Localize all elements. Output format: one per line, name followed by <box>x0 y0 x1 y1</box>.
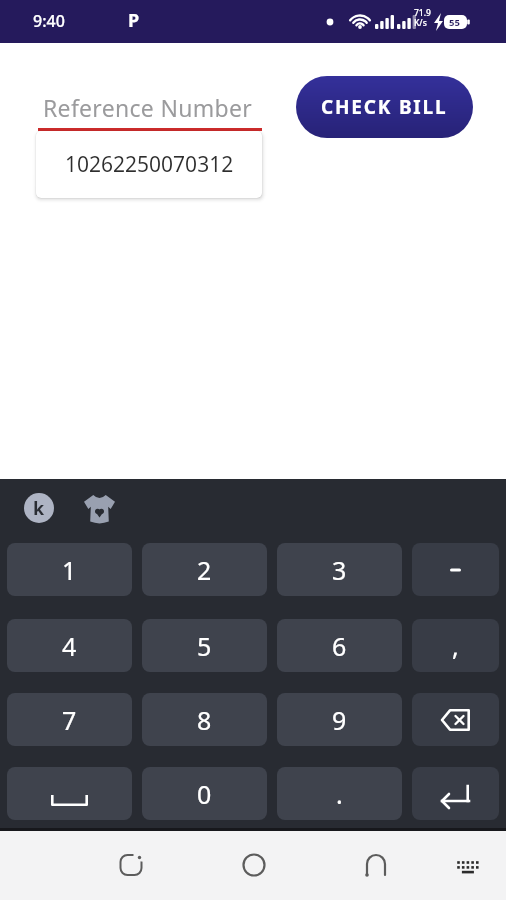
staticText: 9 <box>332 703 347 737</box>
button[interactable] <box>7 767 132 820</box>
button[interactable]: 7 <box>7 693 132 746</box>
staticText: k <box>33 496 45 521</box>
staticText: 4 <box>62 629 77 663</box>
button[interactable]: 5 <box>142 619 267 672</box>
staticText: . <box>336 777 343 811</box>
staticText: 0 <box>197 777 212 811</box>
button[interactable] <box>450 859 484 881</box>
staticText: 5 <box>197 629 212 663</box>
staticText: 3 <box>332 553 347 587</box>
button[interactable] <box>84 495 115 523</box>
button[interactable]: 1 <box>7 543 132 596</box>
button[interactable] <box>111 844 151 884</box>
staticText: 9:40 <box>33 10 65 32</box>
button[interactable] <box>412 767 499 820</box>
button[interactable] <box>356 844 396 884</box>
staticText: 7 <box>62 703 77 737</box>
button[interactable] <box>412 693 499 746</box>
staticText: 8 <box>197 703 212 737</box>
staticText: 10262250070312 <box>65 150 234 179</box>
button[interactable]: . <box>277 767 402 820</box>
button[interactable]: , <box>412 619 499 672</box>
button[interactable]: 10262250070312 <box>36 131 262 198</box>
button[interactable]: 9 <box>277 693 402 746</box>
button[interactable] <box>234 844 274 884</box>
button[interactable]: 6 <box>277 619 402 672</box>
staticText: , <box>452 629 459 663</box>
button[interactable]: 3 <box>277 543 402 596</box>
staticText: 1 <box>62 553 77 587</box>
button[interactable]: CHECK BILL <box>296 76 473 138</box>
staticText: P <box>128 8 140 33</box>
button[interactable]: k <box>24 493 54 523</box>
button[interactable]: 0 <box>142 767 267 820</box>
button[interactable]: 4 <box>7 619 132 672</box>
staticText: CHECK BILL <box>321 94 448 120</box>
staticText: 2 <box>197 553 212 587</box>
button[interactable]: 2 <box>142 543 267 596</box>
staticText: Reference Number <box>43 92 252 123</box>
button[interactable] <box>412 543 499 596</box>
staticText: 55 <box>449 16 460 29</box>
staticText: 6 <box>332 629 347 663</box>
staticText: 71.9 K/s <box>414 7 431 28</box>
button[interactable]: 8 <box>142 693 267 746</box>
